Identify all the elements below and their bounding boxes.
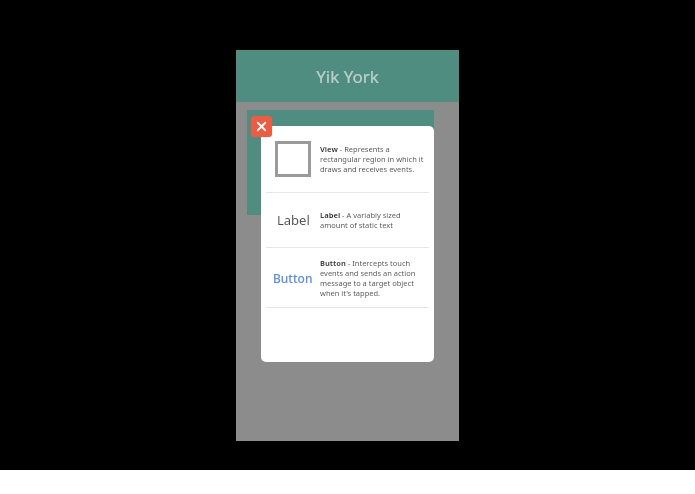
staticText: Label — [277, 211, 310, 229]
staticText: Label - A variably sized amount of stati… — [320, 210, 428, 230]
button[interactable]: Label — [261, 193, 434, 247]
button[interactable]: View - Represents a rectangular region i… — [261, 126, 434, 192]
staticText: Button — [273, 270, 313, 286]
staticText: Yik York — [316, 65, 379, 88]
button[interactable]: Close — [251, 116, 272, 137]
staticText: Button - Intercepts touch events and sen… — [320, 258, 428, 298]
staticText: View - Represents a rectangular region i… — [320, 144, 428, 174]
button[interactable]: Button — [261, 248, 434, 307]
